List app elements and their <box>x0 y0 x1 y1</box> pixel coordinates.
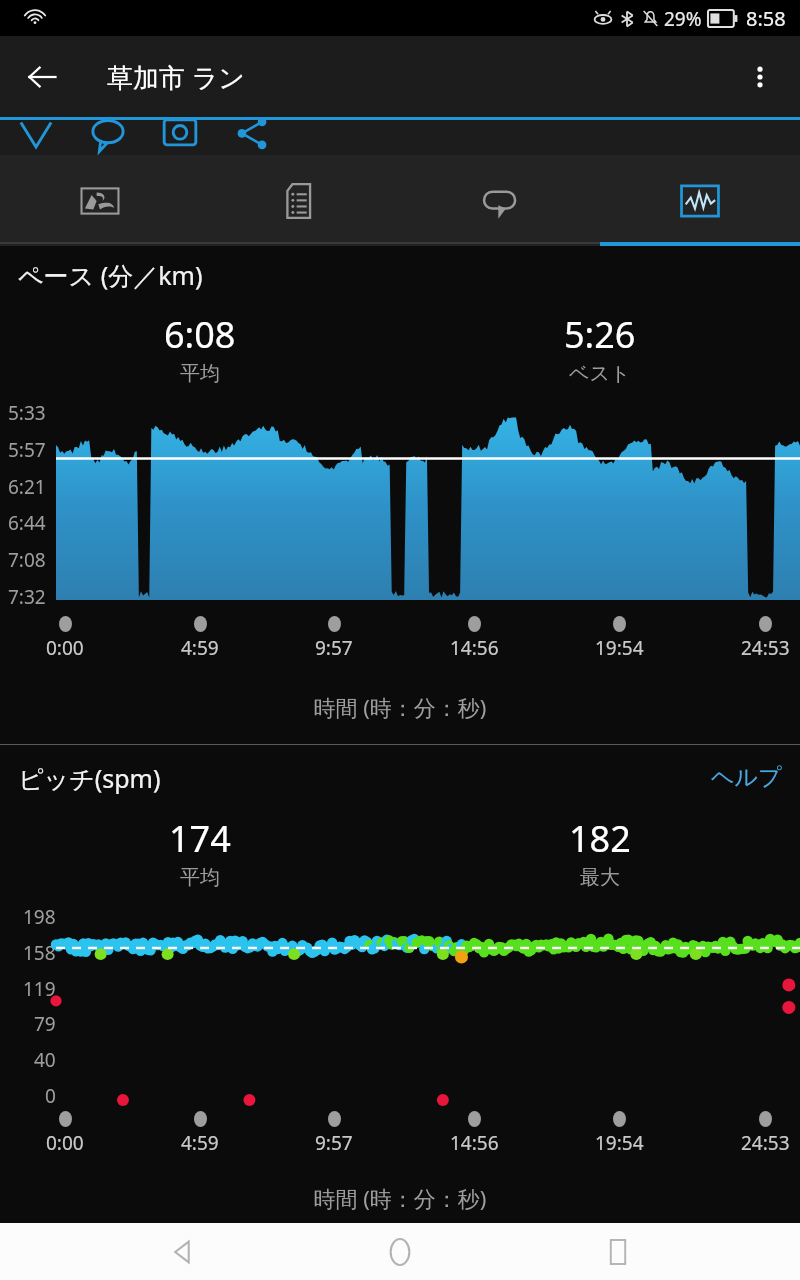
button[interactable]: Home <box>365 1223 435 1280</box>
staticText: 平均 <box>180 361 220 386</box>
button[interactable]: Back <box>148 1223 218 1280</box>
staticText: 40 <box>34 1047 56 1073</box>
staticText: 14:56 <box>450 635 499 661</box>
button[interactable]: Share <box>234 119 278 155</box>
staticText: 19:54 <box>595 1130 644 1156</box>
button[interactable]: Map <box>0 155 200 246</box>
staticText: ヘルプ <box>711 763 782 792</box>
staticText: 29% <box>664 6 702 32</box>
staticText: 24:53 <box>741 635 790 661</box>
staticText: 5:26 <box>564 310 636 359</box>
staticText: 4:59 <box>181 635 219 661</box>
staticText: 119 <box>23 976 56 1002</box>
staticText: 19:54 <box>595 635 644 661</box>
button[interactable]: ヘルプ <box>693 759 800 796</box>
button[interactable]: Back <box>14 49 70 105</box>
staticText: ペース (分／km) <box>18 258 203 292</box>
staticText: ベスト <box>569 361 631 386</box>
staticText: 0 <box>45 1083 56 1109</box>
button[interactable]: Charts <box>600 155 800 246</box>
staticText: 最大 <box>580 865 620 890</box>
staticText: 182 <box>569 814 631 863</box>
staticText: 158 <box>23 940 56 966</box>
button[interactable]: Like <box>18 119 62 155</box>
button[interactable]: Details <box>200 155 400 246</box>
staticText: 0:00 <box>46 635 84 661</box>
staticText: 9:57 <box>315 1130 353 1156</box>
staticText: 5:33 <box>8 400 46 426</box>
staticText: 174 <box>169 814 231 863</box>
staticText: 79 <box>34 1011 56 1037</box>
staticText: 0:00 <box>46 1130 84 1156</box>
staticText: 5:57 <box>8 437 46 463</box>
staticText: 6:21 <box>8 474 46 500</box>
staticText: 7:08 <box>8 547 46 573</box>
staticText: 7:32 <box>8 584 46 610</box>
staticText: ピッチ(spm) <box>18 761 161 795</box>
button[interactable]: Comment <box>90 119 134 155</box>
staticText: 6:08 <box>164 310 236 359</box>
staticText: 4:59 <box>181 1130 219 1156</box>
staticText: 8:58 <box>746 5 786 32</box>
staticText: 時間 (時：分：秒) <box>0 692 800 722</box>
staticText: 198 <box>23 904 56 930</box>
staticText: 24:53 <box>741 1130 790 1156</box>
staticText: 草加市 ラン <box>107 59 245 95</box>
button[interactable]: Photo <box>162 119 206 155</box>
staticText: 6:44 <box>8 510 46 536</box>
staticText: 9:57 <box>315 635 353 661</box>
staticText: 平均 <box>180 865 220 890</box>
button[interactable]: Laps <box>400 155 600 246</box>
button[interactable]: More options <box>732 49 788 105</box>
button[interactable]: Recents <box>583 1223 653 1280</box>
staticText: 14:56 <box>450 1130 499 1156</box>
staticText: 時間 (時：分：秒) <box>0 1183 800 1213</box>
